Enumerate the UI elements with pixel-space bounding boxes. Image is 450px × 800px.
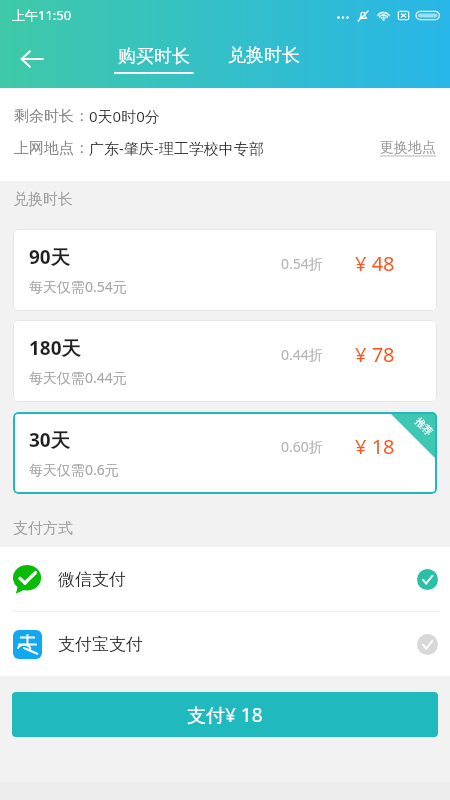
staticText: 90天: [29, 244, 70, 270]
staticText: 兑换时长: [228, 44, 300, 67]
button[interactable]: Back: [4, 30, 60, 88]
staticText: 0.44折: [281, 345, 323, 364]
button[interactable]: 微信支付: [0, 547, 450, 611]
button[interactable]: 90天: [13, 229, 437, 311]
button[interactable]: 30天: [13, 412, 437, 494]
button[interactable]: 支付¥ 18: [12, 692, 438, 737]
staticText: ¥ 48: [355, 250, 395, 277]
staticText: 上午11:50: [12, 6, 72, 24]
staticText: 180天: [29, 335, 81, 361]
staticText: 上网地点：: [14, 139, 89, 158]
staticText: ¥ 78: [355, 341, 395, 368]
staticText: 支付¥ 18: [187, 702, 263, 728]
staticText: 每天仅需0.54元: [29, 277, 127, 296]
button[interactable]: 支付宝支付: [0, 612, 450, 676]
staticText: 支付宝支付: [58, 634, 143, 655]
staticText: 0.60折: [281, 437, 323, 456]
staticText: 每天仅需0.44元: [29, 368, 127, 387]
staticText: 剩余时长：: [14, 107, 89, 126]
staticText: ¥ 18: [355, 433, 395, 460]
staticText: 0天0时0分: [89, 106, 160, 126]
button[interactable]: 兑换时长: [224, 42, 304, 88]
staticText: 购买时长: [118, 45, 190, 68]
staticText: 更换地点: [380, 139, 436, 157]
button[interactable]: 购买时长: [110, 45, 198, 88]
staticText: 微信支付: [58, 569, 126, 590]
staticText: 每天仅需0.6元: [29, 460, 119, 479]
staticText: 广东-肇庆-理工学校中专部: [89, 138, 264, 158]
staticText: 兑换时长: [13, 190, 73, 209]
button[interactable]: 更换地点: [380, 139, 436, 157]
staticText: 推荐: [412, 415, 436, 438]
staticText: 30天: [29, 427, 70, 453]
button[interactable]: 180天: [13, 320, 437, 402]
staticText: 0.54折: [281, 254, 323, 273]
staticText: 支付方式: [13, 519, 73, 538]
